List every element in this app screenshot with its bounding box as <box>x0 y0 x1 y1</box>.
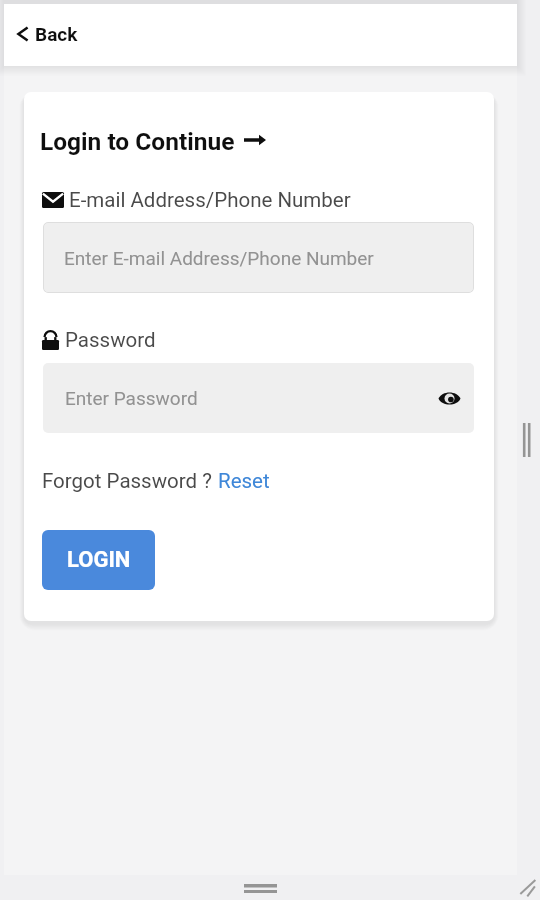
button[interactable]: Back <box>4 20 92 50</box>
staticText: Enter Password <box>65 387 198 409</box>
staticText: E-mail Address/Phone Number <box>69 188 351 212</box>
staticText: Forgot Password ? <box>42 469 217 493</box>
button[interactable]: Reset <box>218 469 270 493</box>
button[interactable]: Resize height <box>240 880 282 898</box>
staticText: Back <box>35 23 78 45</box>
staticText: Password <box>65 328 156 352</box>
button[interactable]: Show password <box>434 381 464 415</box>
staticText: LOGIN <box>67 547 131 573</box>
staticText: Login to Continue <box>40 127 235 156</box>
button[interactable]: Enter Password <box>43 363 474 433</box>
button[interactable]: LOGIN <box>42 530 155 590</box>
staticText: Reset <box>218 469 270 493</box>
button[interactable]: Resize <box>516 875 540 900</box>
button[interactable]: Resize viewport width <box>519 419 535 461</box>
button[interactable]: Enter E-mail Address/Phone Number <box>43 222 474 293</box>
staticText: Enter E-mail Address/Phone Number <box>64 247 374 269</box>
